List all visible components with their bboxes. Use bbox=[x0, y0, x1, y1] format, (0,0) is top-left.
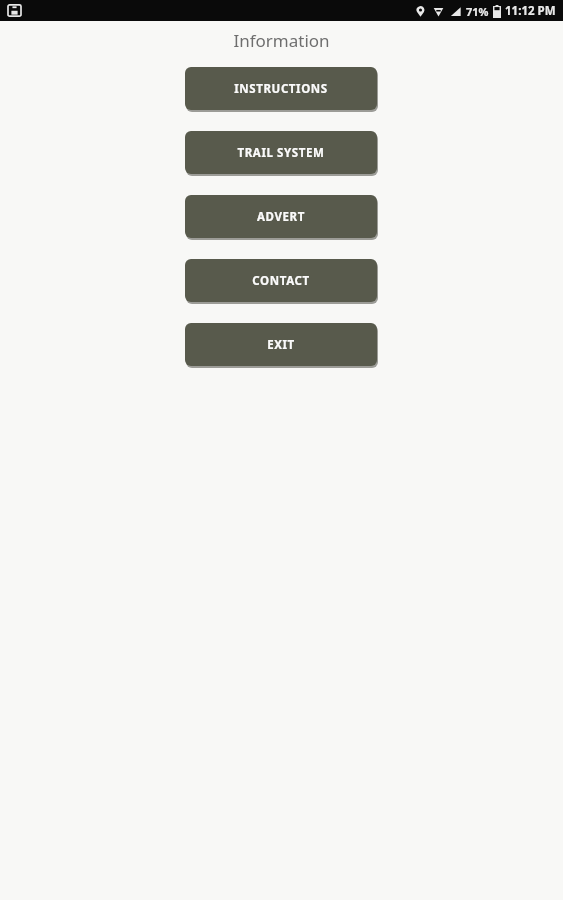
staticText: INSTRUCTIONS bbox=[234, 81, 328, 97]
staticText: 11:12 PM bbox=[505, 3, 556, 19]
staticText: ADVERT bbox=[257, 209, 305, 225]
button[interactable]: EXIT bbox=[185, 323, 378, 368]
staticText: EXIT bbox=[267, 337, 295, 353]
button[interactable]: CONTACT bbox=[185, 259, 378, 304]
button[interactable]: TRAIL SYSTEM bbox=[185, 131, 378, 176]
staticText: Information bbox=[233, 29, 330, 52]
button[interactable]: INSTRUCTIONS bbox=[185, 67, 378, 112]
staticText: 71% bbox=[466, 4, 489, 19]
button[interactable]: ADVERT bbox=[185, 195, 378, 240]
staticText: CONTACT bbox=[252, 273, 310, 289]
staticText: TRAIL SYSTEM bbox=[237, 145, 325, 161]
